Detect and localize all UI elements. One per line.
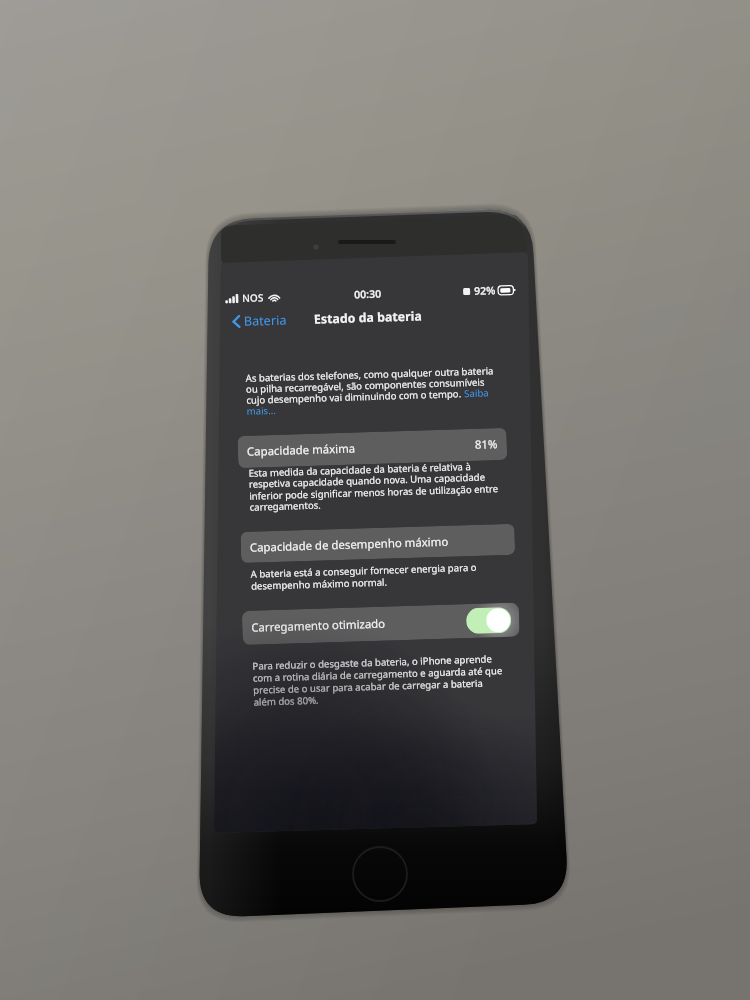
staticText: com a rotina diária de carregamento e ag… [253, 664, 503, 685]
staticText: Esta medida da capacidade da bateria é r… [248, 460, 472, 480]
staticText: Carregamento otimizado [251, 616, 385, 636]
staticText: Capacidade de desempenho máximo [250, 534, 449, 556]
staticText: cujo desempenho vai diminuindo com o tem… [246, 387, 464, 407]
staticText: carregamentos. [249, 499, 322, 514]
staticText: além dos 80%. [253, 694, 320, 709]
button[interactable]: Saiba [464, 386, 489, 400]
staticText: Estado da bateria [314, 307, 422, 328]
staticText: 00:30 [354, 287, 381, 301]
staticText: desempenho máximo normal. [251, 576, 388, 593]
staticText: Capacidade máxima [247, 440, 356, 460]
staticText: inferior pode significar menos horas de … [249, 482, 498, 503]
button[interactable]: Home [353, 847, 407, 901]
staticText: Bateria [244, 312, 287, 329]
button[interactable]: Bateria [207, 308, 295, 333]
staticText: Para reduzir o desgaste da bateria, o iP… [252, 652, 493, 673]
staticText: As baterias dos telefones, como qualquer… [245, 364, 494, 385]
staticText: ou pilha recarregável, são componentes c… [246, 375, 485, 396]
button[interactable]: mais... [246, 404, 277, 418]
staticText: respetiva capacidade quando nova. Uma ca… [249, 471, 486, 491]
staticText: NOS [242, 290, 264, 305]
staticText: precise de o usar para acabar de carrega… [253, 677, 483, 697]
staticText: 92% [474, 283, 496, 298]
button[interactable]: Carregamento otimizado [466, 607, 512, 634]
staticText: A bateria está a conseguir fornecer ener… [250, 561, 477, 581]
staticText: 81% [475, 436, 498, 453]
button[interactable]: Capacidade de desempenho máximo [240, 524, 515, 563]
button[interactable]: Carregamento otimizado [242, 603, 520, 645]
button[interactable]: Capacidade máxima [237, 428, 507, 468]
